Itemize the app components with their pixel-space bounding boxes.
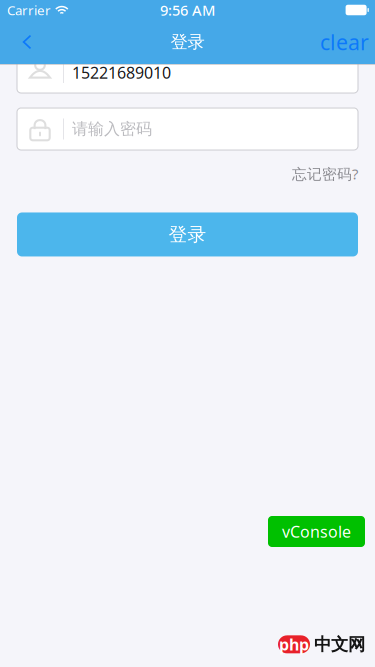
staticText: 15221689010 — [72, 62, 171, 83]
button[interactable]: 忘记密码? — [292, 164, 358, 183]
button[interactable]: clear — [320, 20, 375, 64]
button[interactable]: Back — [8, 20, 46, 64]
staticText: vConsole — [282, 521, 351, 542]
staticText: 忘记密码? — [292, 164, 358, 183]
staticText: 中文网 — [314, 634, 365, 655]
button[interactable]: 15221689010 — [17, 52, 358, 93]
staticText: php — [279, 634, 309, 655]
staticText: 登录 — [170, 31, 204, 53]
staticText: clear — [320, 28, 369, 56]
button[interactable]: 登录 — [17, 212, 358, 256]
button[interactable]: 请输入密码 — [17, 108, 358, 150]
staticText: 请输入密码 — [72, 119, 152, 139]
staticText: 9:56 AM — [160, 0, 215, 20]
staticText: Carrier — [7, 1, 51, 19]
button[interactable]: vConsole — [268, 516, 365, 547]
staticText: 登录 — [168, 223, 206, 246]
